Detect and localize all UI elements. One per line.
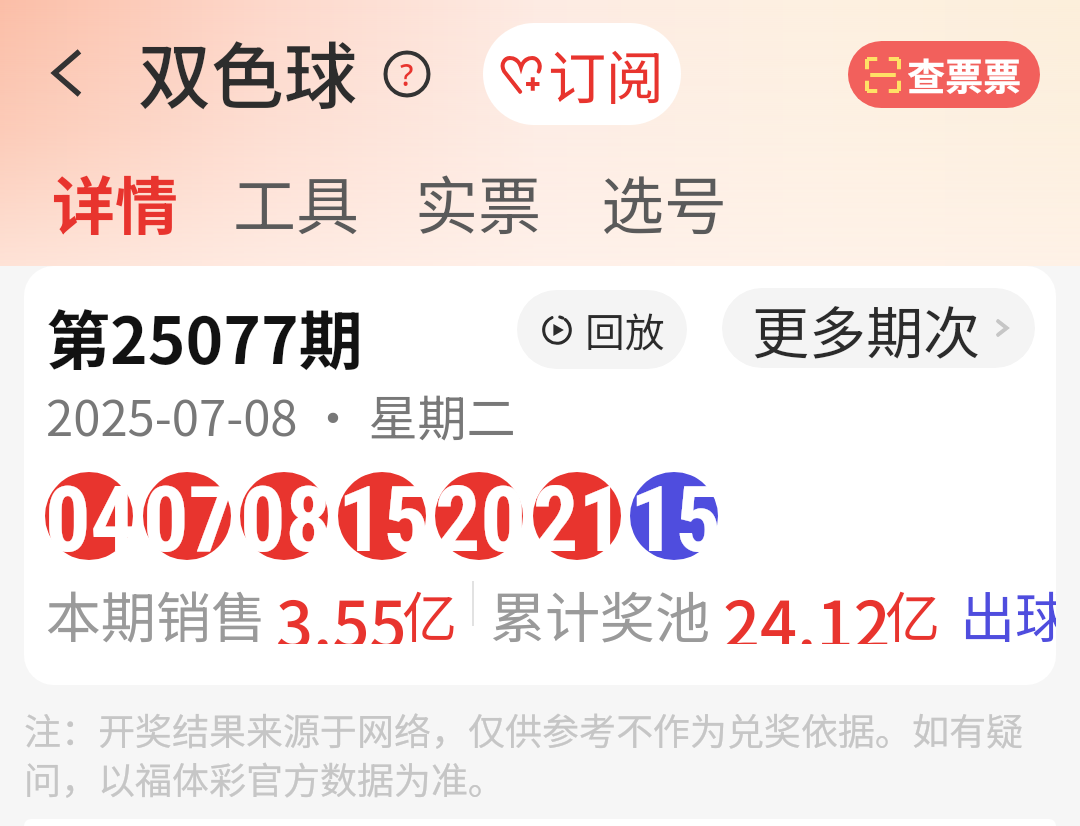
button[interactable]: 实票 bbox=[415, 156, 541, 247]
button[interactable]: 回放 bbox=[517, 290, 687, 369]
staticText: 选号 bbox=[601, 156, 727, 247]
staticText: 21 bbox=[533, 468, 621, 556]
staticText: 2025-07-08 · 星期二 bbox=[46, 379, 516, 450]
staticText: 第25077期 bbox=[46, 290, 363, 383]
button[interactable]: 查票票 bbox=[848, 41, 1040, 108]
staticText: 15 bbox=[630, 468, 718, 556]
staticText: 3.55 bbox=[276, 574, 407, 644]
staticText: 更多期次 bbox=[752, 288, 980, 368]
staticText: 回放 bbox=[585, 301, 665, 359]
staticText: 亿 bbox=[402, 574, 458, 644]
staticText: 订阅 bbox=[548, 32, 665, 116]
button[interactable]: 出球 bbox=[960, 574, 1056, 644]
staticText: 08 bbox=[240, 468, 328, 556]
button[interactable]: 详情 bbox=[52, 156, 178, 247]
staticText: 24.12 bbox=[723, 574, 891, 644]
button[interactable]: 工具 bbox=[233, 156, 359, 247]
staticText: 注：开奖结果来源于网络，仅供参考不作为兑奖依据。如有疑问，以福体彩官方数据为准。 bbox=[24, 702, 1058, 805]
button[interactable]: Help bbox=[381, 48, 433, 100]
button[interactable]: 订阅 bbox=[483, 23, 681, 125]
staticText: 本期销售 bbox=[46, 574, 267, 644]
staticText: ? bbox=[400, 54, 414, 95]
staticText: 实票 bbox=[415, 156, 541, 247]
staticText: 工具 bbox=[233, 156, 359, 247]
staticText: 04 bbox=[45, 468, 133, 556]
staticText: 07 bbox=[143, 468, 231, 556]
staticText: 亿 bbox=[885, 574, 941, 644]
button[interactable]: 选号 bbox=[601, 156, 727, 247]
button[interactable]: 更多期次 bbox=[722, 288, 1035, 368]
staticText: 累计奖池 bbox=[490, 574, 711, 644]
staticText: 详情 bbox=[52, 156, 178, 247]
staticText: 15 bbox=[338, 468, 426, 556]
staticText: 20 bbox=[435, 468, 523, 556]
staticText: 查票票 bbox=[907, 47, 1022, 102]
staticText: 双色球 bbox=[138, 18, 357, 124]
button[interactable]: Back bbox=[33, 40, 99, 106]
